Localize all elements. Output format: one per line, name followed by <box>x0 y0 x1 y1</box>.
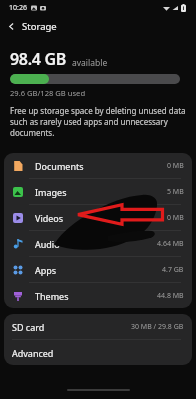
staticText: Audio <box>35 238 60 250</box>
button[interactable]: SD card <box>4 314 192 339</box>
staticText: Images <box>35 186 67 198</box>
staticText: 98.4 GB <box>10 48 67 70</box>
button[interactable]: Documents <box>4 153 192 178</box>
button[interactable]: Apps <box>4 257 192 282</box>
staticText: 44.8 MB <box>157 291 184 301</box>
button[interactable]: Images <box>4 179 192 204</box>
staticText: Themes <box>35 290 69 302</box>
button[interactable]: Videos <box>4 205 192 230</box>
staticText: 0 MB <box>167 161 184 171</box>
staticText: Advanced <box>12 347 54 359</box>
staticText: 30 MB / 29.8 GB <box>131 322 184 332</box>
button[interactable]: Themes <box>4 283 192 308</box>
staticText: Free up storage space by deleting unused… <box>10 105 186 138</box>
staticText: Documents <box>35 160 84 172</box>
staticText: 10:26 <box>9 3 27 13</box>
staticText: 0 MB <box>167 213 184 223</box>
staticText: Apps <box>35 264 57 276</box>
staticText: 29.6 GB/128 GB used <box>10 88 86 98</box>
staticText: Videos <box>35 212 64 224</box>
button[interactable]: Back <box>0 15 22 37</box>
button[interactable]: Audio <box>4 231 192 256</box>
button[interactable]: Advanced <box>4 340 192 365</box>
staticText: 4.64 MB <box>157 239 184 249</box>
staticText: 4.7 GB <box>162 265 184 275</box>
staticText: available <box>72 57 108 69</box>
staticText: 5 MB <box>167 187 184 197</box>
staticText: Storage <box>22 20 57 33</box>
staticText: SD card <box>12 321 45 333</box>
